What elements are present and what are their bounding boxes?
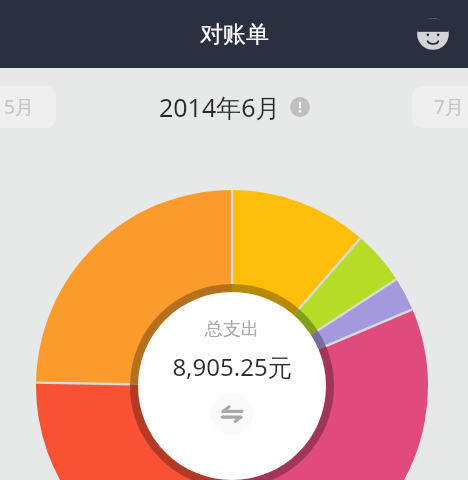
button[interactable]: 5月 [0,86,56,128]
button[interactable]: 2014年6月 [149,84,320,130]
button[interactable]: 7月 [412,86,468,128]
staticText: 7月 [434,94,464,120]
other: Expense breakdown chart [0,0,468,480]
button[interactable]: Switch between income and expense [211,393,253,435]
staticText: 对账单 [200,20,269,49]
button[interactable]: Profile [412,13,454,55]
staticText: 5月 [4,94,34,120]
staticText: 总支出 [205,318,259,341]
staticText: 8,905.25元 [172,350,292,383]
staticText: 2014年6月 [159,90,281,124]
